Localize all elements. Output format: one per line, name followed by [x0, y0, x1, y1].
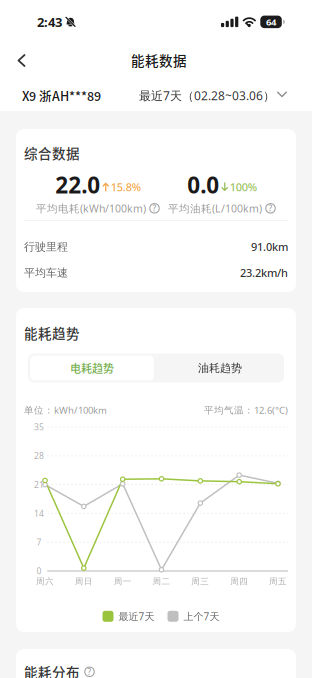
staticText: 周三 [191, 576, 209, 587]
staticText: 35 [34, 421, 44, 433]
staticText: ? [87, 666, 91, 677]
staticText: 14 [34, 508, 44, 519]
staticText: 综合数据 [24, 143, 80, 162]
staticText: 15.8% [111, 179, 141, 194]
staticText: 平均车速 [24, 266, 68, 280]
staticText: 周四 [230, 576, 248, 587]
staticText: 0 [36, 565, 41, 577]
staticText: 最近7天 [118, 609, 154, 623]
staticText: 周二 [152, 576, 170, 587]
staticText: 64 [266, 15, 276, 28]
staticText: ? [268, 203, 272, 214]
staticText: ? [152, 203, 156, 214]
staticText: 2:43 [37, 13, 62, 31]
staticText: 91.0km [251, 239, 288, 254]
staticText: 28 [34, 450, 44, 462]
staticText: 平均电耗(kWh/100km) [36, 201, 146, 215]
button[interactable] [0, 40, 312, 80]
staticText: 周日 [75, 576, 93, 587]
button[interactable]: 油耗趋势 [158, 355, 282, 380]
staticText: 21 [34, 479, 44, 490]
staticText: 周六 [36, 576, 54, 587]
staticText: 周五 [269, 576, 287, 587]
staticText: 上个7天 [183, 609, 219, 623]
staticText: 能耗趋势 [24, 323, 80, 342]
staticText: 最近7天（02.28~03.06） [139, 87, 275, 104]
staticText: 周一 [114, 576, 132, 587]
staticText: 能耗数据 [131, 50, 187, 70]
staticText: 油耗趋势 [198, 361, 242, 375]
staticText: 100% [230, 179, 257, 194]
staticText: 7 [36, 536, 41, 548]
staticText: 行驶里程 [24, 240, 68, 254]
staticText: 平均油耗(L/100km) [168, 201, 262, 215]
staticText: 电耗趋势 [70, 360, 114, 376]
staticText: 23.2km/h [240, 265, 288, 280]
staticText: 平均气温：12.6(°C) [204, 403, 288, 416]
button[interactable]: 最近7天（02.28~03.06） [139, 87, 287, 104]
staticText: 单位：kWh/100km [24, 403, 107, 416]
staticText: 22.0 [55, 169, 100, 200]
staticText: X9 浙AH***89 [22, 86, 101, 105]
staticText: 0.0 [187, 169, 219, 200]
staticText: 能耗分布 [24, 662, 80, 678]
button[interactable]: 电耗趋势 [30, 355, 154, 380]
